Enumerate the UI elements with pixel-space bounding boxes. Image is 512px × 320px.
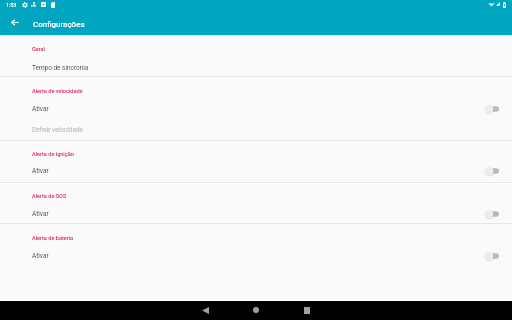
staticText: Alerta de bateria: [32, 235, 74, 242]
button[interactable]: Home: [239, 300, 273, 320]
button[interactable]: Back: [188, 300, 222, 320]
staticText: Geral: [32, 46, 45, 53]
button[interactable]: Ativar: [0, 203, 512, 224]
staticText: Definir velocidade: [32, 126, 83, 134]
button[interactable]: Ativar: [0, 98, 512, 119]
button[interactable]: Tempo de sincronia: [0, 57, 512, 78]
staticText: Ativar: [32, 105, 49, 113]
staticText: Tempo de sincronia: [32, 64, 89, 72]
button[interactable]: Ativar: [0, 245, 512, 266]
button[interactable]: Definir velocidade: [0, 119, 512, 140]
staticText: Ativar: [32, 210, 49, 218]
button[interactable]: Ativar: [0, 160, 512, 181]
staticText: Alerta de velocidade: [32, 88, 83, 95]
staticText: Alerta de SOS: [32, 193, 67, 200]
staticText: Ativar: [32, 167, 49, 175]
button[interactable]: Back: [6, 14, 23, 31]
staticText: 1:53: [6, 2, 17, 8]
staticText: Configurações: [33, 20, 85, 29]
button[interactable]: Recent apps: [290, 300, 324, 320]
staticText: Ativar: [32, 252, 49, 260]
staticText: Alerta de ignição: [32, 151, 74, 158]
